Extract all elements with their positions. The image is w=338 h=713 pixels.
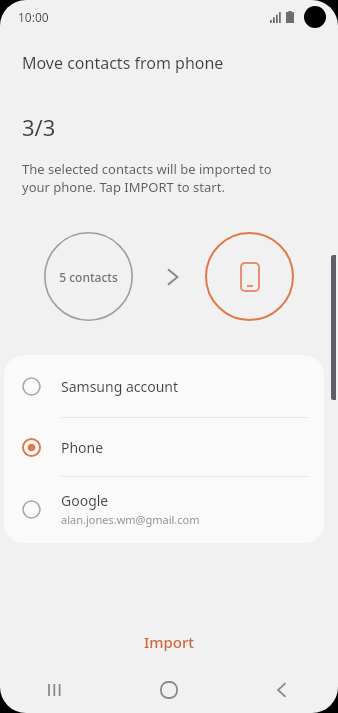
button[interactable]: Import (0, 624, 338, 660)
button[interactable]: Back (225, 667, 338, 713)
staticText: 5 contacts (59, 269, 118, 285)
staticText: 10:00 (18, 9, 49, 25)
staticText: Google (61, 491, 109, 510)
button[interactable]: Home (112, 667, 225, 713)
staticText: The selected contacts will be imported t… (22, 160, 272, 196)
staticText: Samsung account (61, 377, 179, 396)
button[interactable]: Samsung account (4, 355, 324, 417)
button[interactable]: Recent apps (0, 667, 112, 713)
staticText: Import (144, 632, 195, 652)
button[interactable]: Phone (4, 418, 324, 476)
staticText: alan.jones.wm@gmail.com (61, 512, 200, 527)
staticText: Phone (61, 438, 104, 457)
staticText: 3/3 (22, 112, 56, 142)
button[interactable]: Google (4, 477, 324, 541)
staticText: Move contacts from phone (22, 52, 224, 74)
